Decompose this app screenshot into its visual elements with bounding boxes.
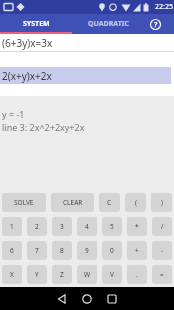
button[interactable]: / xyxy=(152,217,172,236)
staticText: * xyxy=(135,222,139,231)
button[interactable]: 0 xyxy=(102,241,122,260)
button[interactable]: X xyxy=(2,265,22,284)
staticText: Y xyxy=(35,270,39,279)
staticText: ? xyxy=(154,20,158,30)
button[interactable]: = xyxy=(152,265,172,284)
staticText: Z xyxy=(60,270,64,279)
button[interactable]: C xyxy=(99,193,120,212)
button[interactable]: + xyxy=(127,241,147,260)
button[interactable]: - xyxy=(152,241,172,260)
staticText: SYSTEM xyxy=(23,19,50,29)
staticText: (6+3y)x=3x xyxy=(2,36,53,50)
button[interactable]: SYSTEM xyxy=(0,14,72,34)
staticText: 4 xyxy=(85,222,89,231)
button[interactable]: 9 xyxy=(77,241,97,260)
button[interactable]: Y xyxy=(27,265,47,284)
staticText: ( xyxy=(135,198,137,207)
staticText: 0 xyxy=(110,246,114,255)
staticText: 2 xyxy=(35,222,39,231)
staticText: CLEAR xyxy=(63,198,83,207)
staticText: 8 xyxy=(60,246,64,255)
button[interactable]: ) xyxy=(151,193,172,212)
staticText: = xyxy=(160,270,164,279)
button[interactable]: . xyxy=(127,265,147,284)
button[interactable]: 3 xyxy=(52,217,72,236)
staticText: ) xyxy=(161,198,163,207)
button[interactable]: 2(x+y)x+2x xyxy=(0,67,171,84)
staticText: W xyxy=(84,270,91,279)
button[interactable]: W xyxy=(77,265,97,284)
button[interactable] xyxy=(77,289,97,309)
staticText: / xyxy=(161,222,164,231)
button[interactable]: 7 xyxy=(27,241,47,260)
staticText: . xyxy=(136,270,138,279)
staticText: 22:25 xyxy=(155,2,173,12)
staticText: 6 xyxy=(10,246,14,255)
staticText: line 3: 2x^2+2xy+2x xyxy=(2,121,85,133)
staticText: y = -1 xyxy=(2,108,25,120)
staticText: 7 xyxy=(35,246,39,255)
button[interactable]: SOLVE xyxy=(2,193,46,212)
button[interactable]: 4 xyxy=(77,217,97,236)
staticText: V xyxy=(110,270,114,279)
staticText: SOLVE xyxy=(14,198,34,207)
staticText: X xyxy=(10,270,14,279)
button[interactable]: 1 xyxy=(2,217,22,236)
staticText: 9 xyxy=(85,246,89,255)
button[interactable]: ? xyxy=(144,14,174,34)
button[interactable]: QUADRATIC xyxy=(72,14,144,34)
button[interactable]: 8 xyxy=(52,241,72,260)
button[interactable]: Z xyxy=(52,265,72,284)
button[interactable]: 6 xyxy=(2,241,22,260)
staticText: 5 xyxy=(110,222,114,231)
staticText: C xyxy=(107,198,112,207)
staticText: QUADRATIC xyxy=(88,19,129,29)
button[interactable]: ( xyxy=(125,193,146,212)
button[interactable]: V xyxy=(102,265,122,284)
button[interactable]: 2 xyxy=(27,217,47,236)
staticText: 3 xyxy=(60,222,64,231)
button[interactable]: * xyxy=(127,217,147,236)
button[interactable]: CLEAR xyxy=(51,193,94,212)
button[interactable]: (6+3y)x=3x xyxy=(0,34,174,51)
staticText: 1 xyxy=(10,222,14,231)
staticText: 2(x+y)x+2x xyxy=(2,69,52,83)
staticText: + xyxy=(135,246,139,255)
button[interactable] xyxy=(52,289,72,309)
button[interactable] xyxy=(102,289,122,309)
button[interactable]: 5 xyxy=(102,217,122,236)
staticText: - xyxy=(161,246,164,255)
